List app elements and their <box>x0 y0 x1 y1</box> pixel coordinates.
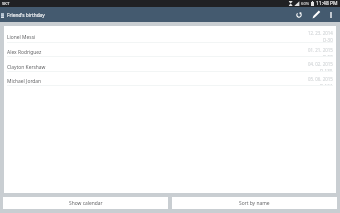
staticText: 11:48 PM <box>316 0 338 7</box>
staticText: D-59 <box>323 54 333 56</box>
staticText: D-130 <box>320 68 333 71</box>
staticText: Alex Rodriguez <box>7 49 42 56</box>
staticText: 01. 21. 2015 <box>308 47 333 53</box>
staticText: SKT <box>2 1 10 7</box>
staticText: D-30 <box>323 37 333 42</box>
staticText: Sort by name <box>239 200 270 207</box>
staticText: 12. 23. 2014 <box>308 30 333 36</box>
button[interactable]: Alex Rodriguez <box>4 43 336 57</box>
button[interactable]: More options <box>323 7 339 22</box>
staticText: Lionel Messi <box>7 34 36 41</box>
staticText: Friend's birthday <box>7 12 45 19</box>
staticText: Michael Jordan <box>7 78 42 85</box>
staticText: D-164 <box>320 83 333 85</box>
button[interactable]: Clayton Kershaw <box>4 57 336 72</box>
staticText: 05. 06. 2015 <box>308 76 333 82</box>
staticText: Clayton Kershaw <box>7 64 46 71</box>
button[interactable]: Michael Jordan <box>4 72 336 86</box>
staticText: 04. 02. 2015 <box>308 61 333 67</box>
button[interactable]: Refresh <box>291 7 307 22</box>
button[interactable]: Show calendar <box>3 197 168 209</box>
button[interactable]: Lionel Messi <box>4 26 336 43</box>
staticText: 60% <box>301 1 310 7</box>
button[interactable]: Edit <box>308 7 324 22</box>
button[interactable]: Sort by name <box>172 197 337 209</box>
staticText: Show calendar <box>69 200 103 207</box>
